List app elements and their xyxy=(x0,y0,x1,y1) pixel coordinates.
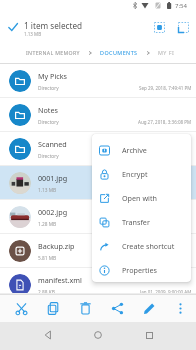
staticText: Sep 29, 2018, 7:49:41 PM xyxy=(139,85,192,91)
button[interactable]: MY FI xyxy=(158,49,175,56)
staticText: Properties xyxy=(122,265,157,275)
button[interactable]: Notes xyxy=(0,98,196,132)
button[interactable]: Open with xyxy=(92,186,191,210)
button[interactable]: Create shortcut xyxy=(92,234,191,258)
staticText: 5.81 MB xyxy=(38,255,57,262)
staticText: 1 item selected xyxy=(24,20,83,31)
button[interactable]: My Picks xyxy=(0,64,196,98)
button[interactable] xyxy=(37,294,69,322)
staticText: Jan 01, 2009, 9:00:00 AM xyxy=(140,289,192,294)
staticText: Scanned xyxy=(38,139,67,149)
button[interactable] xyxy=(139,325,159,345)
staticText: 1.28 MB xyxy=(38,221,57,228)
button[interactable]: Properties xyxy=(92,258,191,282)
button[interactable]: 0001.jpg xyxy=(0,166,196,200)
button[interactable]: Scanned xyxy=(0,132,196,166)
button[interactable]: Transfer xyxy=(92,210,191,234)
staticText: manifest.xml xyxy=(38,275,82,285)
staticText: Open with xyxy=(122,193,157,203)
staticText: Directory xyxy=(38,153,59,160)
staticText: 1.13 MB xyxy=(24,31,42,37)
staticText: Directory xyxy=(38,119,59,126)
button[interactable]: DOCUMENTS xyxy=(100,49,138,56)
button[interactable] xyxy=(175,19,191,35)
button[interactable]: 1 item selected xyxy=(24,20,83,37)
button[interactable] xyxy=(88,325,108,345)
button[interactable]: Encrypt xyxy=(92,162,191,186)
staticText: Transfer xyxy=(122,217,150,227)
staticText: Sep 29, 2018, 7:49:41 PM xyxy=(139,187,192,193)
staticText: 0001.jpg xyxy=(38,173,68,183)
staticText: Archive xyxy=(122,145,147,155)
button[interactable]: INTERNAL MEMORY xyxy=(26,49,80,56)
staticText: Backup.zip xyxy=(38,241,75,251)
button[interactable] xyxy=(151,19,167,35)
staticText: Sep 12, 2018, 1:05:33 PM xyxy=(139,153,192,159)
button[interactable]: manifest.xml xyxy=(0,268,196,294)
button[interactable] xyxy=(133,294,165,322)
staticText: Notes xyxy=(38,105,58,115)
staticText: Sep 29, 2018, 7:50:13 PM xyxy=(139,221,192,227)
button[interactable] xyxy=(5,294,37,322)
staticText: Create shortcut xyxy=(122,241,175,251)
button[interactable]: Archive xyxy=(92,138,191,162)
staticText: 7:54 xyxy=(175,2,187,10)
staticText: My Picks xyxy=(38,71,67,81)
button[interactable]: Backup.zip xyxy=(0,234,196,268)
staticText: 0002.jpg xyxy=(38,207,68,217)
button[interactable] xyxy=(165,294,196,322)
staticText: 1.13 MB xyxy=(38,187,57,194)
button[interactable] xyxy=(38,325,58,345)
button[interactable]: 0002.jpg xyxy=(0,200,196,234)
staticText: Directory xyxy=(38,85,59,92)
staticText: 2.88 KB xyxy=(38,289,55,294)
staticText: Encrypt xyxy=(122,169,148,179)
staticText: Aug 27, 2018, 3:36:08 PM xyxy=(138,119,192,125)
button[interactable] xyxy=(101,294,133,322)
staticText: Oct 02, 2018, 9:14:25 AM xyxy=(139,255,192,261)
button[interactable] xyxy=(69,294,101,322)
